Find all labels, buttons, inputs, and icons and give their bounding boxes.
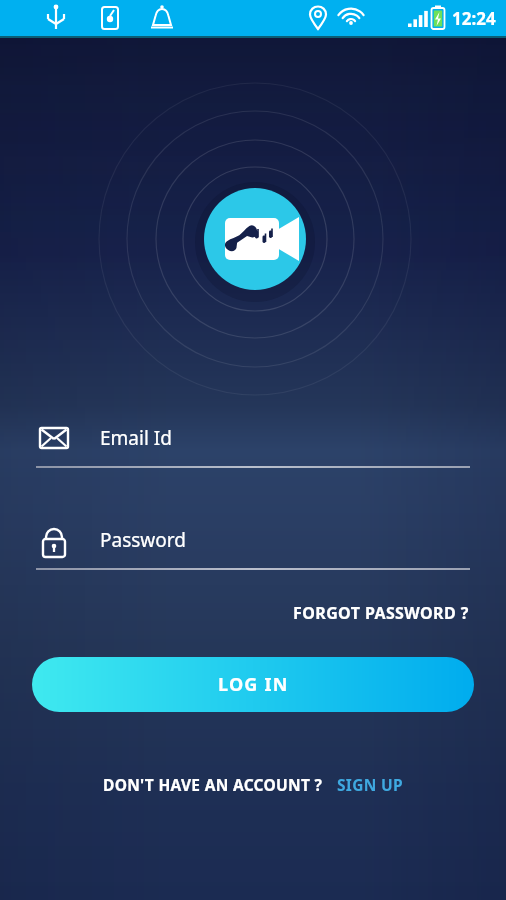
button[interactable]: FORGOT PASSWORD ? [289,598,473,628]
staticText: LOG IN [218,672,289,697]
staticText: SIGN UP [337,774,403,795]
other: Password [36,520,72,560]
staticText: DON'T HAVE AN ACCOUNT ? [103,774,323,795]
button[interactable]: SIGN UP [337,774,403,795]
button[interactable]: Email [0,418,506,458]
staticText: Email Id [100,425,172,451]
button[interactable]: LOG IN [32,657,474,712]
other: Email [36,418,72,458]
staticText: Password [100,527,186,553]
button[interactable]: Password [0,520,506,560]
staticText: 12:24 [452,7,496,30]
staticText: FORGOT PASSWORD ? [293,602,469,624]
